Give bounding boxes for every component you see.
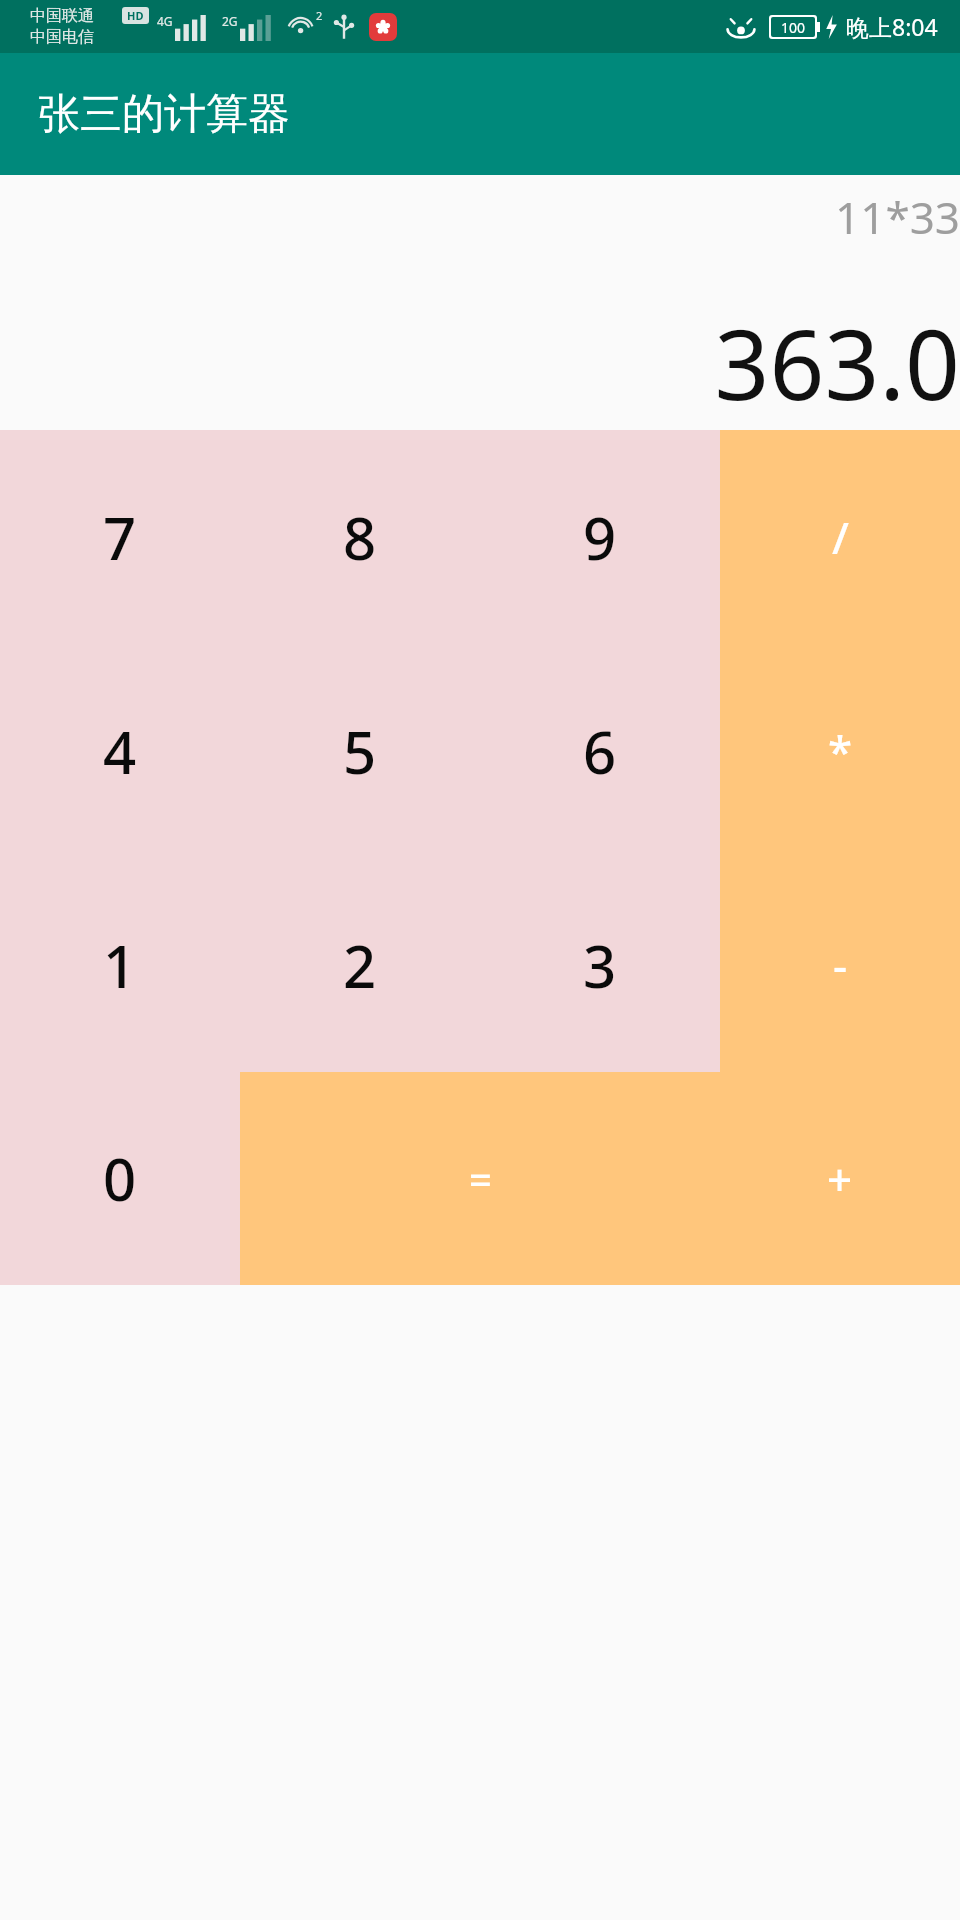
button[interactable]: 5	[240, 644, 480, 858]
staticText: +	[827, 1149, 853, 1209]
staticText: HD	[127, 8, 144, 23]
button[interactable]: 0	[0, 1072, 240, 1285]
staticText: 0	[103, 1139, 137, 1218]
staticText: 9	[583, 498, 617, 577]
button[interactable]: 1	[0, 858, 240, 1072]
button[interactable]: 9	[480, 430, 720, 644]
button[interactable]: Equals	[240, 1072, 720, 1285]
staticText: 100	[781, 18, 806, 37]
button[interactable]: 6	[480, 644, 720, 858]
staticText: 4G	[157, 13, 173, 29]
staticText: 1	[103, 926, 137, 1005]
button[interactable]: Multiply	[720, 644, 960, 858]
button[interactable]: 3	[480, 858, 720, 1072]
button[interactable]: 2	[240, 858, 480, 1072]
staticText: 7	[103, 498, 137, 577]
staticText: 张三的计算器	[38, 88, 290, 141]
staticText: -	[833, 935, 848, 995]
staticText: 6	[583, 712, 617, 791]
staticText: 中国电信	[30, 27, 94, 47]
staticText: =	[469, 1152, 492, 1206]
button[interactable]: Add	[720, 1072, 960, 1285]
button[interactable]: Subtract	[720, 858, 960, 1072]
staticText: 4	[103, 712, 137, 791]
button[interactable]: 4	[0, 644, 240, 858]
button[interactable]: 7	[0, 430, 240, 644]
staticText: 11*33	[835, 187, 960, 247]
button[interactable]: 8	[240, 430, 480, 644]
staticText: /	[832, 507, 849, 567]
staticText: 2G	[222, 13, 238, 29]
button[interactable]: Divide	[720, 430, 960, 644]
staticText: 3	[583, 926, 617, 1005]
staticText: 2	[343, 926, 377, 1005]
staticText: 5	[343, 712, 377, 791]
staticText: *	[828, 721, 853, 781]
staticText: 8	[343, 498, 377, 577]
staticText: 2	[316, 8, 323, 23]
staticText: 晚上8:04	[846, 11, 938, 42]
staticText: 中国联通	[30, 6, 94, 26]
staticText: 363.0	[714, 297, 960, 428]
